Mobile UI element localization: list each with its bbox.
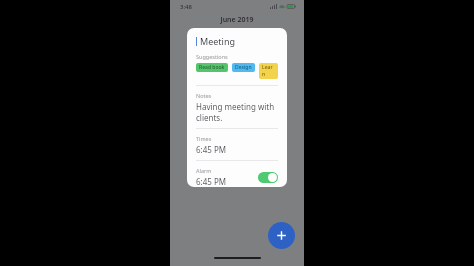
button[interactable]: Design (232, 63, 255, 72)
button[interactable]: Alarm toggle (258, 172, 278, 183)
staticText: 6:45 PM (196, 176, 227, 187)
staticText: Learn (262, 64, 275, 78)
button[interactable]: Learn (259, 63, 278, 79)
staticText: Notes (196, 92, 212, 99)
staticText: 3:48 (180, 3, 192, 11)
staticText: June 2019 (220, 15, 254, 25)
staticText: Alarm (196, 167, 212, 174)
button[interactable]: Add task (268, 222, 295, 249)
staticText: Having meeting with clients. (196, 101, 278, 123)
staticText: Times (196, 135, 212, 142)
staticText: Read book (199, 64, 225, 71)
staticText: Suggestions (196, 53, 228, 60)
button[interactable]: Read book (196, 63, 228, 72)
staticText: 6:45 PM (196, 144, 227, 155)
staticText: Design (235, 64, 252, 71)
staticText: Meeting (200, 35, 235, 47)
